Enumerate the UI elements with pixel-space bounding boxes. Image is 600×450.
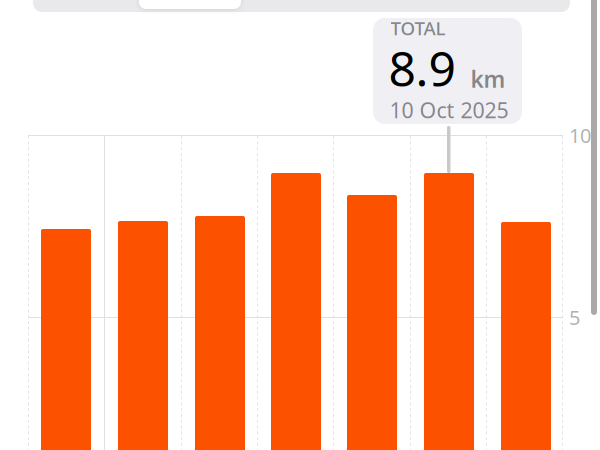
staticText: 8.9: [388, 36, 455, 100]
staticText: TOTAL: [390, 16, 445, 40]
staticText: 5: [569, 304, 580, 331]
staticText: 10: [569, 122, 591, 149]
staticText: 10 Oct 2025: [389, 96, 508, 124]
staticText: km: [470, 64, 505, 94]
button[interactable]: Week: [139, 0, 245, 12]
